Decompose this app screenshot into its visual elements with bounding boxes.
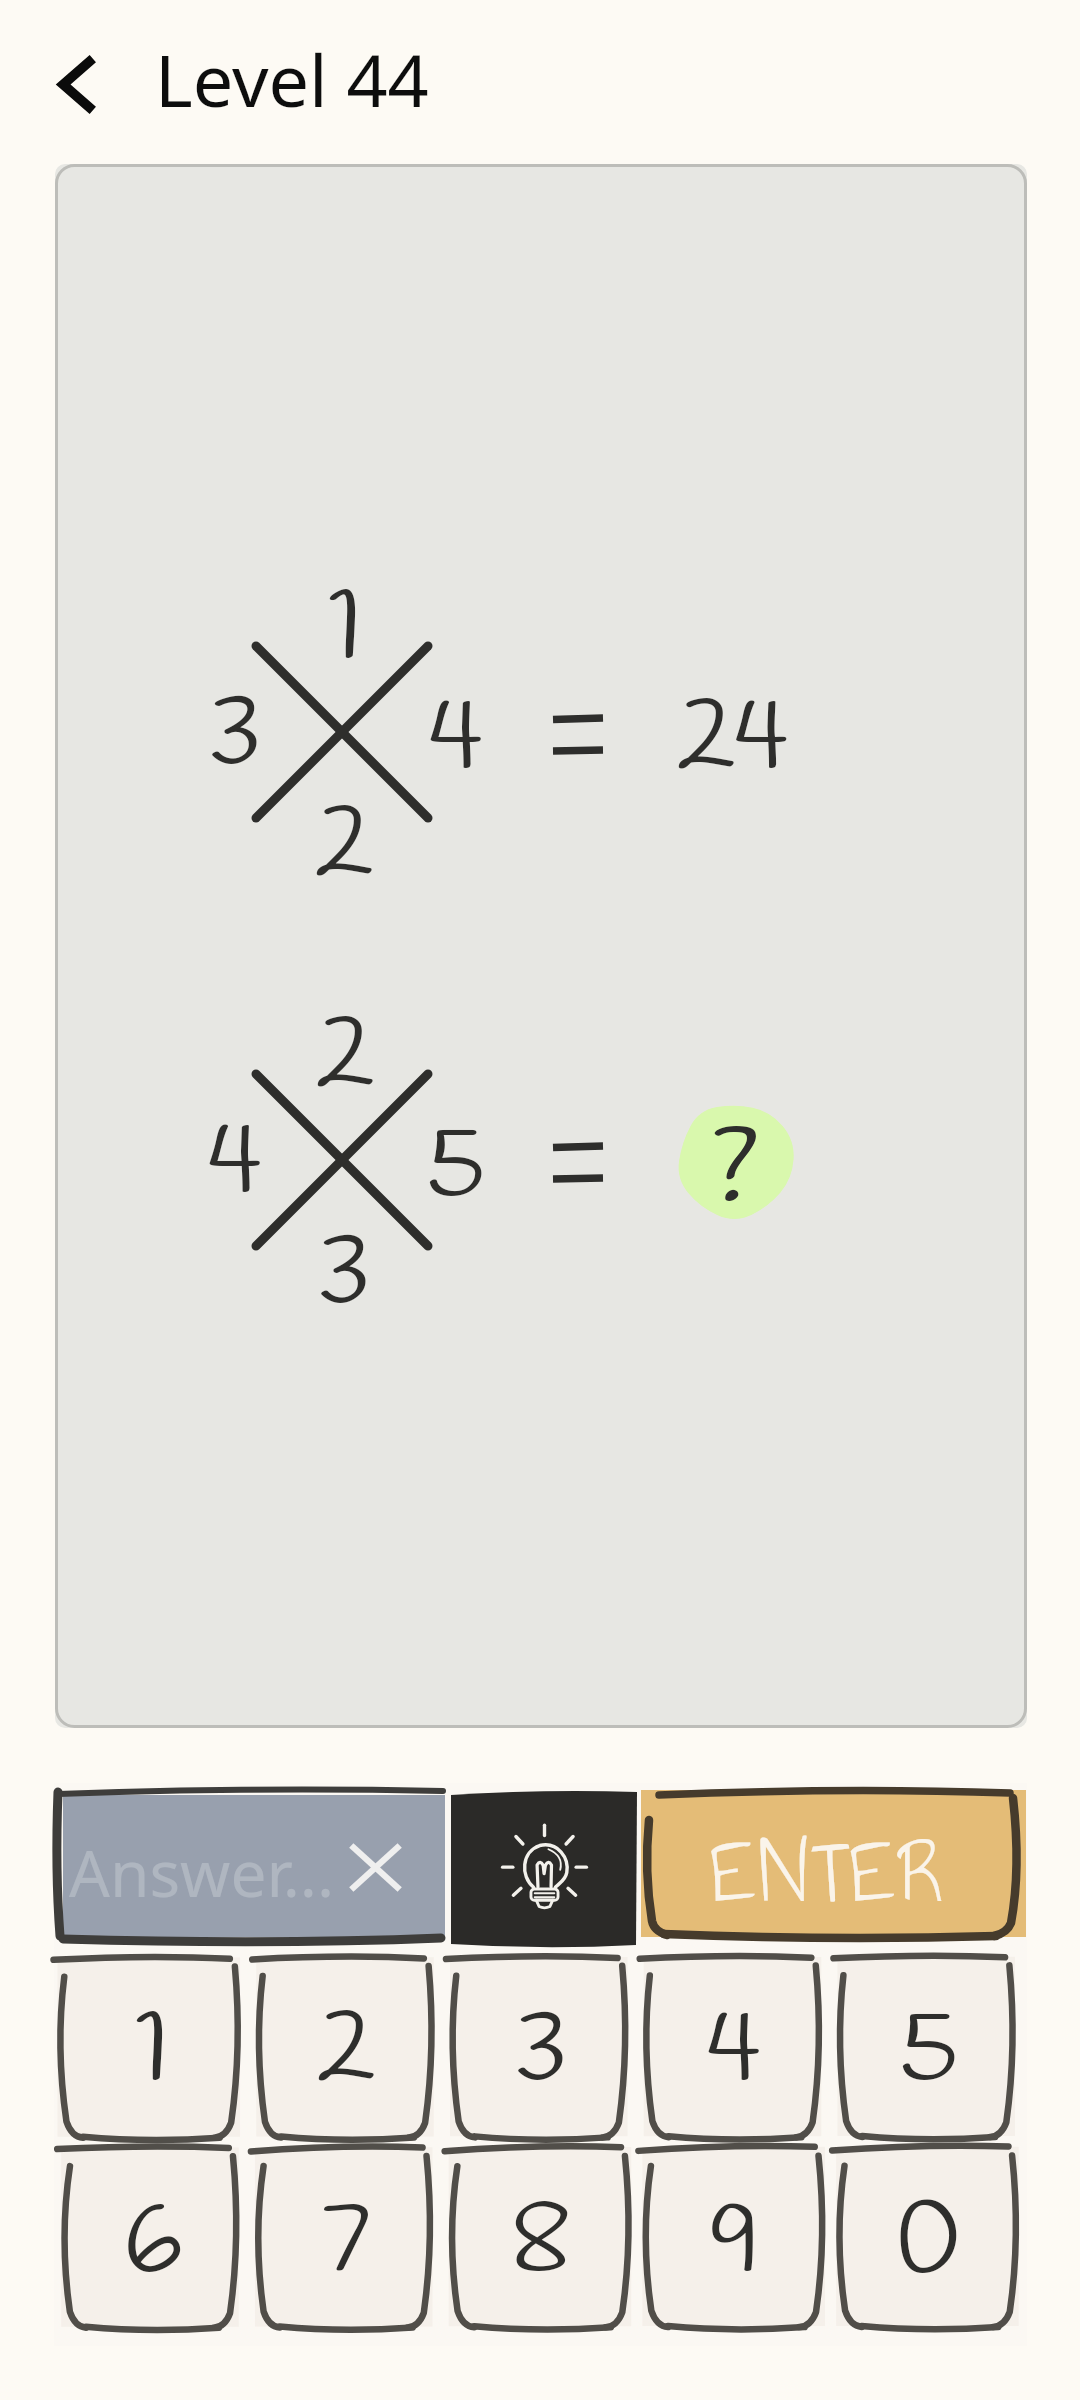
button[interactable]: 5 (830, 1953, 1027, 2147)
staticText: 0 (895, 2175, 962, 2313)
button[interactable]: 3 (442, 1953, 639, 2147)
staticText: 3 (317, 1207, 371, 1345)
staticText: 2 (316, 990, 375, 1128)
button[interactable]: 7 (248, 2144, 445, 2338)
staticText: 3 (514, 1984, 568, 2122)
button[interactable]: Back (34, 40, 122, 128)
staticText: 1 (328, 562, 363, 700)
staticText: 4 (706, 1984, 763, 2122)
button[interactable]: 6 (54, 2144, 251, 2338)
staticText: ? (711, 1101, 759, 1245)
button[interactable]: ENTER (641, 1786, 1027, 1951)
staticText: 7 (321, 2175, 372, 2313)
staticText: 9 (709, 2175, 761, 2313)
staticText: 3 (208, 668, 262, 806)
staticText: 5 (426, 1100, 486, 1238)
staticText: 24 (677, 672, 790, 810)
button[interactable]: 0 (830, 2144, 1027, 2338)
button[interactable]: 1 (54, 1953, 251, 2147)
button[interactable]: Answer... (53, 1787, 445, 1953)
staticText: 2 (315, 779, 374, 917)
button[interactable]: Hint (449, 1788, 639, 1951)
staticText: 8 (510, 2175, 572, 2313)
staticText: 6 (123, 2175, 183, 2313)
staticText: Level 44 (155, 30, 429, 128)
staticText: 4 (207, 1096, 264, 1234)
staticText: ? (712, 1100, 760, 1244)
staticText: ENTER (710, 1805, 950, 1940)
staticText: 4 (428, 672, 485, 810)
staticText: 1 (135, 1984, 170, 2122)
staticText: 2 (317, 1984, 376, 2122)
button[interactable]: 8 (442, 2144, 639, 2338)
button[interactable]: 2 (248, 1953, 445, 2147)
staticText: Answer... (69, 1829, 335, 1916)
button[interactable]: 4 (636, 1953, 833, 2147)
staticText: 5 (899, 1984, 959, 2122)
button[interactable]: 9 (636, 2144, 833, 2338)
